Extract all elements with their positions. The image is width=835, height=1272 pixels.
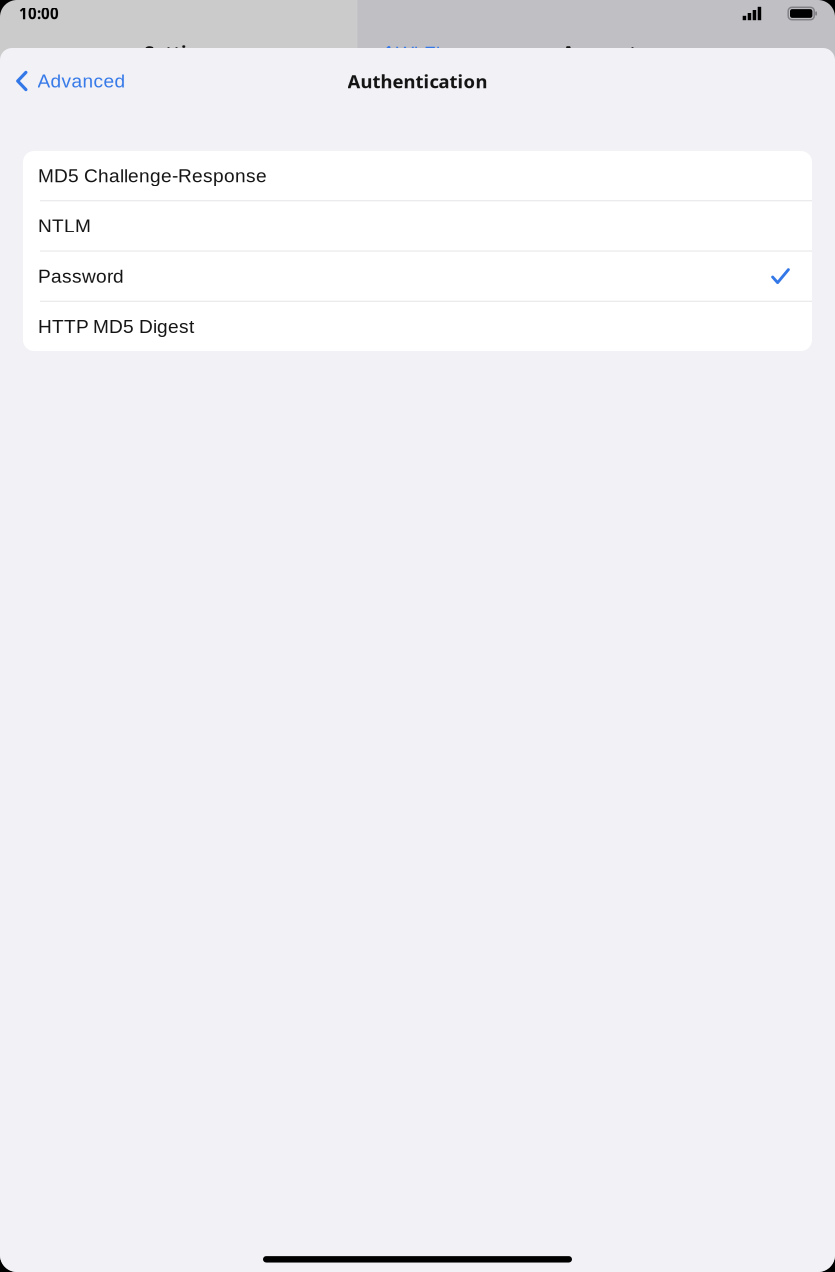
staticText: MD5 Challenge-Response [38,165,267,186]
staticText: HTTP MD5 Digest [38,316,194,337]
button[interactable]: MD5 Challenge-Response [23,151,812,200]
staticText: Account [562,39,637,65]
staticText: Authentication [347,68,487,94]
staticText: Settings [144,39,220,65]
staticText: Password [38,265,124,287]
staticText: 10:00 [19,3,59,24]
button[interactable]: NTLM [23,201,812,250]
staticText: Advanced [37,70,125,92]
staticText: NTLM [38,215,91,236]
button[interactable]: HTTP MD5 Digest [23,302,812,351]
button[interactable]: Advanced [0,62,137,100]
staticText: Wi-Fi [396,42,440,64]
button[interactable]: Password [23,251,812,301]
